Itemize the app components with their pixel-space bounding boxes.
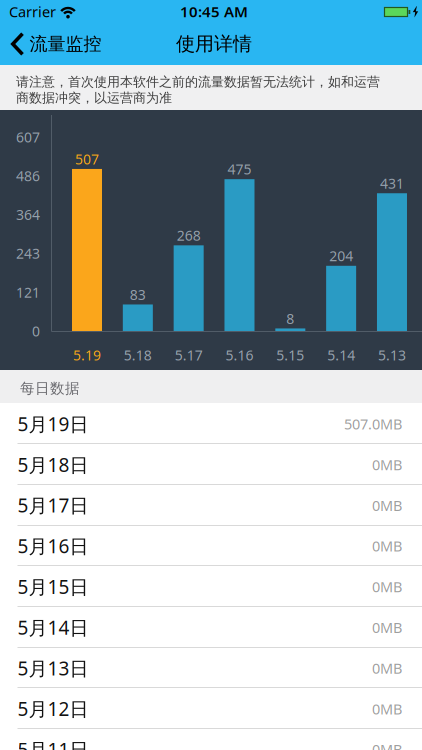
staticText: 每日数据 — [20, 380, 80, 397]
staticText: 83 — [130, 285, 146, 304]
staticText: 使用详情 — [176, 32, 252, 56]
staticText: 204 — [329, 246, 353, 265]
staticText: 5.18 — [124, 346, 152, 364]
staticText: 243 — [16, 244, 40, 263]
staticText: 0MB — [372, 740, 402, 750]
staticText: 0 — [32, 322, 40, 340]
staticText: 8 — [286, 309, 294, 328]
staticText: 5.16 — [225, 346, 253, 364]
staticText: 607 — [16, 128, 40, 146]
staticText: 0MB — [372, 577, 402, 596]
staticText: 5.17 — [175, 346, 203, 364]
staticText: 0MB — [372, 536, 402, 556]
staticText: 5月15日 — [17, 574, 88, 599]
staticText: 10:45 AM — [180, 1, 248, 21]
staticText: 5月12日 — [17, 696, 88, 721]
button[interactable]: 流量监控 — [0, 32, 101, 55]
staticText: 5.13 — [378, 346, 406, 364]
staticText: 121 — [16, 283, 40, 301]
staticText: 268 — [177, 226, 201, 245]
staticText: 475 — [227, 160, 251, 178]
staticText: 5.15 — [276, 346, 304, 364]
staticText: 0MB — [372, 699, 402, 718]
staticText: 流量监控 — [29, 33, 101, 55]
staticText: 0MB — [372, 496, 402, 515]
staticText: 364 — [16, 205, 40, 224]
staticText: 5月14日 — [17, 615, 88, 640]
staticText: 507 — [75, 150, 99, 168]
staticText: 507.0MB — [344, 414, 402, 433]
staticText: 请注意，首次使用本软件之前的流量数据暂无法统计，如和运营 — [16, 74, 380, 90]
staticText: 5.14 — [327, 346, 355, 364]
staticText: 5月18日 — [17, 452, 88, 477]
staticText: 431 — [380, 174, 404, 193]
staticText: 0MB — [372, 658, 402, 678]
staticText: 5月13日 — [17, 655, 88, 681]
staticText: 5月11日 — [17, 737, 88, 750]
staticText: Carrier — [9, 2, 56, 21]
staticText: 0MB — [372, 455, 402, 474]
staticText: 商数据冲突，以运营商为准 — [16, 90, 172, 106]
staticText: 0MB — [372, 618, 402, 637]
staticText: 5.19 — [73, 346, 101, 364]
staticText: 5月16日 — [17, 533, 88, 558]
staticText: 5月19日 — [17, 411, 88, 436]
staticText: 486 — [16, 166, 40, 185]
staticText: 5月17日 — [17, 493, 88, 518]
